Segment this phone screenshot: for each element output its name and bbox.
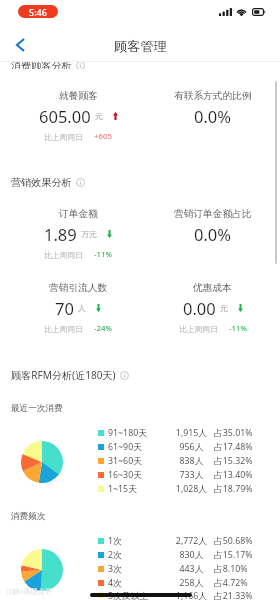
staticText: -24% bbox=[94, 323, 112, 334]
staticText: 比上周同日 bbox=[44, 250, 83, 260]
button[interactable]: 1~15天 bbox=[98, 482, 259, 496]
staticText: 0.0% bbox=[194, 223, 232, 245]
staticText: 1,028人 bbox=[169, 483, 214, 495]
staticText: 占18.79% bbox=[214, 483, 259, 495]
staticText: 有联系方式的比例 bbox=[174, 90, 252, 102]
staticText: 占13.40% bbox=[214, 469, 259, 481]
staticText: 就餐顾客 bbox=[59, 90, 98, 102]
button[interactable]: 营销引流人数 bbox=[11, 282, 145, 334]
staticText: 顾客管理 bbox=[114, 38, 167, 55]
staticText: 口碑×美团点评 bbox=[5, 586, 53, 596]
button[interactable]: 91~180天 bbox=[98, 426, 259, 440]
staticText: 人 bbox=[78, 303, 86, 313]
staticText: 2次 bbox=[108, 549, 169, 561]
staticText: 订单金额 bbox=[59, 208, 98, 220]
staticText: 消费顾客分析 bbox=[11, 62, 72, 69]
staticText: 1,915人 bbox=[169, 427, 214, 439]
staticText: 占35.01% bbox=[214, 427, 259, 439]
staticText: 营销订单金额占比 bbox=[174, 208, 252, 220]
staticText: 1~15天 bbox=[108, 483, 169, 495]
staticText: 830人 bbox=[169, 549, 214, 561]
button[interactable]: 2次 bbox=[98, 548, 259, 562]
button[interactable]: 16~30天 bbox=[98, 468, 259, 482]
staticText: +605 bbox=[94, 131, 112, 142]
button[interactable]: 61~90天 bbox=[98, 440, 259, 454]
button[interactable]: Back bbox=[6, 31, 34, 59]
button[interactable]: 31~60天 bbox=[98, 454, 259, 468]
staticText: 营销引流人数 bbox=[49, 282, 108, 294]
staticText: 733人 bbox=[169, 469, 214, 481]
staticText: 比上周同日 bbox=[44, 132, 83, 142]
button[interactable]: 3次 bbox=[98, 562, 259, 576]
staticText: 占50.68% bbox=[214, 535, 259, 547]
staticText: 元 bbox=[220, 303, 228, 313]
staticText: 3次 bbox=[108, 563, 169, 575]
staticText: 占8.10% bbox=[214, 563, 259, 575]
button[interactable]: 订单金额 bbox=[11, 208, 145, 260]
staticText: 258人 bbox=[169, 577, 214, 589]
staticText: 4次 bbox=[108, 577, 169, 589]
staticText: 比上周同日 bbox=[44, 324, 83, 334]
staticText: 占17.48% bbox=[214, 441, 259, 453]
staticText: 605.00 bbox=[39, 105, 91, 127]
staticText: 16~30天 bbox=[108, 469, 169, 481]
button[interactable]: 5次及以上 bbox=[98, 590, 259, 600]
staticText: 万元 bbox=[81, 229, 97, 239]
staticText: 占15.32% bbox=[214, 455, 259, 467]
staticText: 元 bbox=[95, 111, 103, 121]
staticText: 占4.72% bbox=[214, 577, 259, 589]
staticText: 61~90天 bbox=[108, 441, 169, 453]
staticText: 443人 bbox=[169, 563, 214, 575]
staticText: 956人 bbox=[169, 441, 214, 453]
button[interactable]: 有联系方式的比例 bbox=[145, 90, 280, 127]
staticText: -11% bbox=[94, 249, 112, 260]
button[interactable]: 4次 bbox=[98, 576, 259, 590]
button[interactable]: 营销订单金额占比 bbox=[145, 208, 280, 245]
staticText: 优惠成本 bbox=[193, 282, 232, 294]
staticText: 比上周同日 bbox=[179, 324, 218, 334]
staticText: 5:46 bbox=[29, 6, 47, 18]
staticText: 1.89 bbox=[44, 223, 77, 245]
staticText: 最近一次消费 bbox=[11, 403, 63, 414]
staticText: 1次 bbox=[108, 535, 169, 547]
staticText: 0.0% bbox=[194, 105, 232, 127]
button[interactable]: 优惠成本 bbox=[145, 282, 280, 334]
staticText: 31~60天 bbox=[108, 455, 169, 467]
staticText: 营销效果分析 bbox=[11, 176, 72, 189]
button[interactable]: 1次 bbox=[98, 534, 259, 548]
staticText: 5次及以上 bbox=[108, 590, 169, 600]
staticText: 838人 bbox=[169, 455, 214, 467]
staticText: 占15.17% bbox=[214, 549, 259, 561]
staticText: 占21.33% bbox=[214, 590, 259, 600]
staticText: 2,772人 bbox=[169, 535, 214, 547]
staticText: -11% bbox=[229, 323, 247, 334]
staticText: 91~180天 bbox=[108, 427, 169, 439]
staticText: 0.00 bbox=[183, 297, 216, 319]
staticText: 消费频次 bbox=[11, 511, 46, 522]
staticText: 顾客RFM分析(近180天) bbox=[11, 368, 116, 382]
button[interactable]: 就餐顾客 bbox=[11, 90, 145, 142]
staticText: 70 bbox=[55, 297, 74, 319]
staticText: 1,166人 bbox=[169, 590, 214, 600]
